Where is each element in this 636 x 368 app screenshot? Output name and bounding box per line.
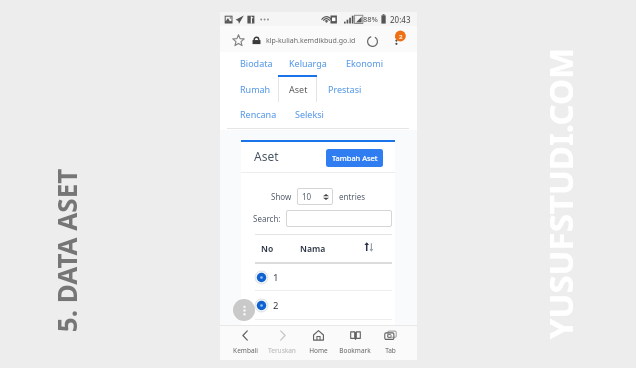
button[interactable] [286, 210, 392, 227]
staticText: 10 [302, 191, 312, 202]
staticText: YUSUFSTUDI.COM [537, 47, 582, 339]
button[interactable]: Seleksi [290, 104, 329, 123]
button[interactable]: Tambah Aset [326, 149, 383, 167]
staticText: entries [339, 191, 366, 202]
button[interactable]: Reload [366, 35, 379, 48]
staticText: klp-kuliah.kemdikbud.go.id [266, 36, 356, 46]
staticText: Show [271, 191, 292, 202]
button[interactable]: Biodata [235, 53, 278, 72]
staticText: 20:43 [390, 14, 411, 25]
button[interactable]: 2 [255, 291, 392, 319]
staticText: Seleksi [295, 108, 324, 120]
staticText: Aset [289, 83, 308, 95]
staticText: 2 [399, 33, 403, 41]
staticText: 5. DATA ASET [48, 168, 83, 332]
staticText: Teruskan [268, 346, 296, 355]
staticText: Rencana [240, 108, 277, 120]
staticText: Rumah [240, 83, 271, 95]
staticText: Keluarga [289, 57, 327, 69]
staticText: 1 [273, 271, 279, 284]
staticText: Prestasi [328, 83, 362, 95]
staticText: Tab [385, 346, 396, 355]
staticText: No [261, 243, 274, 255]
button[interactable]: Ekonomi [341, 53, 388, 72]
button[interactable]: Aset [284, 79, 313, 98]
button[interactable]: Prestasi [323, 79, 367, 98]
staticText: Kembali [233, 346, 258, 355]
staticText: Nama [300, 243, 326, 255]
button[interactable]: Bookmark [232, 34, 245, 47]
staticText: Ekonomi [346, 57, 383, 69]
button[interactable]: Kembali [226, 329, 264, 359]
staticText: 2 [273, 299, 279, 312]
button[interactable]: Keluarga [284, 53, 332, 72]
button[interactable]: Tab [371, 329, 409, 359]
staticText: Tambah Aset [332, 153, 378, 163]
staticText: Home [309, 346, 328, 355]
button[interactable]: 1 [255, 264, 392, 290]
staticText: Aset [254, 148, 279, 164]
button[interactable]: Rencana [235, 104, 282, 123]
button[interactable]: Home [299, 329, 337, 359]
button[interactable]: Bookmark [336, 329, 374, 359]
button[interactable]: 10 [297, 188, 333, 205]
button[interactable]: Rumah [235, 79, 276, 98]
staticText: Bookmark [339, 346, 371, 355]
staticText: Search: [253, 213, 281, 224]
staticText: 88% [363, 14, 378, 24]
staticText: Biodata [240, 57, 273, 69]
button[interactable]: Teruskan [263, 329, 301, 359]
button[interactable]: More options [233, 299, 255, 321]
button[interactable]: Menu [390, 29, 410, 49]
